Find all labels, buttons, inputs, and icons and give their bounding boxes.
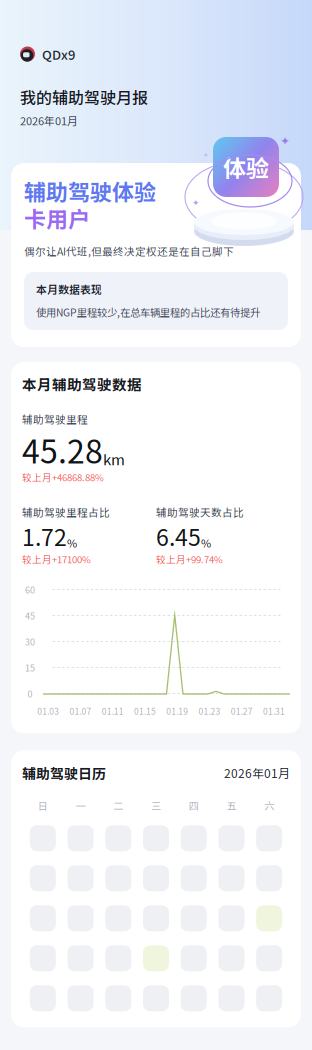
staticText: 六 <box>264 798 274 813</box>
staticText: 使用NGP里程较少,在总车辆里程的占比还有待提升 <box>36 304 260 319</box>
staticText: 体验 <box>223 150 269 184</box>
staticText: km <box>103 448 125 470</box>
staticText: 二 <box>113 798 123 813</box>
button[interactable]: Day <box>30 985 56 1011</box>
staticText: 01.31 <box>263 705 285 717</box>
staticText: 01.11 <box>102 705 124 717</box>
staticText: 较上月+46868.88% <box>22 470 104 484</box>
button[interactable]: Day <box>30 825 56 851</box>
button[interactable]: Day <box>218 985 244 1011</box>
button[interactable]: Day <box>105 905 131 931</box>
staticText: 01.23 <box>198 705 220 717</box>
button[interactable]: Day <box>30 905 56 931</box>
button[interactable]: Day <box>181 945 207 971</box>
staticText: 辅助驾驶天数占比 <box>156 504 244 520</box>
button[interactable]: Day <box>105 865 131 891</box>
button[interactable]: Day <box>256 985 282 1011</box>
button[interactable]: Day <box>68 825 94 851</box>
staticText: 本月数据表现 <box>36 281 102 297</box>
button[interactable]: Day <box>68 905 94 931</box>
staticText: 2026年01月 <box>20 112 78 128</box>
button[interactable]: Day <box>181 825 207 851</box>
button[interactable]: Day <box>30 865 56 891</box>
staticText: 辅助驾驶日历 <box>22 763 106 783</box>
button[interactable]: Day <box>68 985 94 1011</box>
button[interactable]: Day <box>181 985 207 1011</box>
staticText: 2026年01月 <box>224 764 290 781</box>
staticText: 6.45 <box>156 519 201 553</box>
staticText: 60 <box>25 583 35 596</box>
staticText: ✦ <box>192 198 200 208</box>
staticText: 0 <box>27 687 32 700</box>
button[interactable]: Day <box>218 825 244 851</box>
staticText: 01.27 <box>231 705 253 717</box>
button[interactable]: Day <box>218 905 244 931</box>
staticText: QDx9 <box>42 45 75 63</box>
button[interactable]: Day <box>256 825 282 851</box>
staticText: ✦ <box>280 134 290 148</box>
staticText: 01.19 <box>166 705 188 717</box>
button[interactable]: Day <box>143 825 169 851</box>
button[interactable]: Day <box>143 865 169 891</box>
staticText: 辅助驾驶里程 <box>22 411 88 427</box>
staticText: 四 <box>189 798 199 813</box>
staticText: 五 <box>226 798 236 813</box>
button[interactable]: Day <box>143 905 169 931</box>
staticText: 辅助驾驶里程占比 <box>22 504 110 520</box>
staticText: 卡用户 <box>24 202 90 234</box>
button[interactable]: Day <box>181 865 207 891</box>
staticText: 45 <box>25 609 35 622</box>
staticText: 较上月+99.74% <box>156 552 223 566</box>
button[interactable]: Day <box>218 865 244 891</box>
staticText: 45.28 <box>22 426 103 473</box>
staticText: % <box>67 535 77 551</box>
button[interactable]: Day <box>143 985 169 1011</box>
staticText: 01.03 <box>37 705 59 717</box>
button[interactable]: Day <box>30 945 56 971</box>
button[interactable]: Day <box>105 945 131 971</box>
button[interactable]: Day <box>105 825 131 851</box>
staticText: 30 <box>25 635 35 648</box>
button[interactable]: Day <box>181 905 207 931</box>
staticText: 较上月+17100% <box>22 552 91 566</box>
staticText: 日 <box>38 798 48 813</box>
staticText: 一 <box>76 798 86 813</box>
button[interactable]: Day <box>68 865 94 891</box>
staticText: 本月辅助驾驶数据 <box>22 373 142 394</box>
staticText: ✦ <box>203 151 209 159</box>
button[interactable]: Day <box>105 985 131 1011</box>
button[interactable]: Day <box>256 865 282 891</box>
staticText: 偶尔让AI代班,但最终决定权还是在自己脚下 <box>24 243 234 259</box>
button[interactable]: Day <box>256 905 282 931</box>
staticText: 辅助驾驶体验 <box>24 175 156 207</box>
staticText: 三 <box>151 798 161 813</box>
button[interactable]: Day <box>256 945 282 971</box>
staticText: 1.72 <box>22 519 67 553</box>
staticText: 01.07 <box>69 705 91 717</box>
button[interactable]: Day <box>68 945 94 971</box>
button[interactable]: Day <box>218 945 244 971</box>
staticText: % <box>201 535 211 551</box>
button[interactable]: QDx9 <box>20 46 75 62</box>
staticText: 15 <box>25 661 35 674</box>
staticText: 我的辅助驾驶月报 <box>20 85 148 109</box>
button[interactable]: Day <box>143 945 169 971</box>
staticText: 01.15 <box>134 705 156 717</box>
